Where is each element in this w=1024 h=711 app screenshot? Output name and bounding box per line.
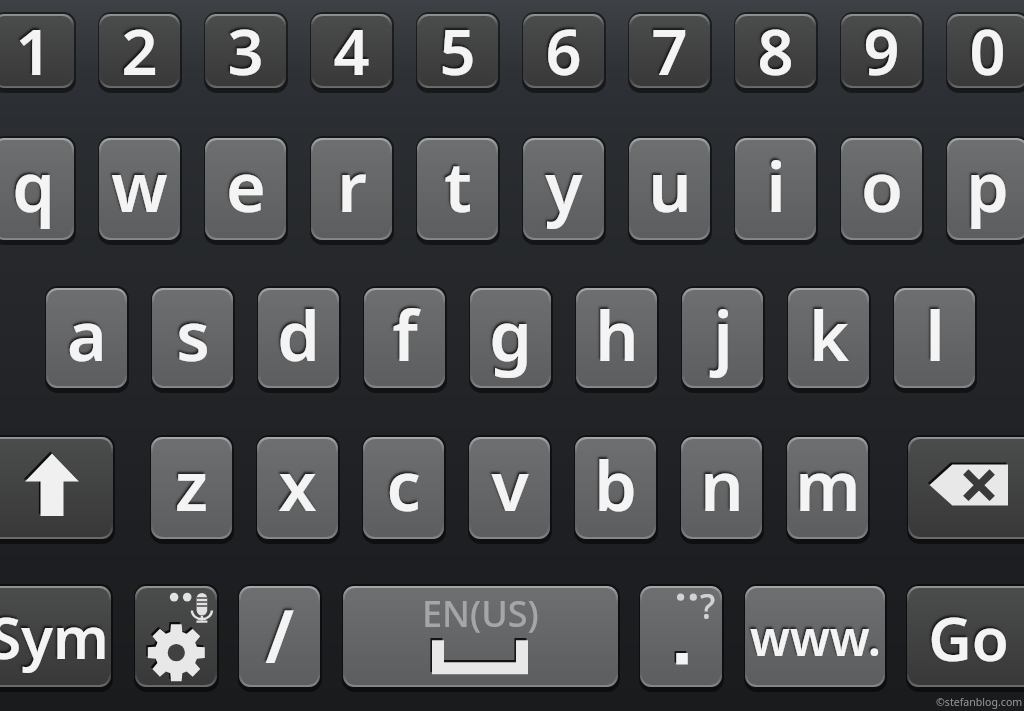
staticText: Sym [0,597,109,676]
staticText: www. [750,605,881,670]
staticText: v [491,438,529,531]
button[interactable]: h [576,288,657,388]
button[interactable]: k [788,288,869,388]
button[interactable]: p [947,138,1024,240]
staticText: y [545,139,583,232]
staticText: w [111,139,168,232]
staticText: e [226,139,266,232]
staticText: ©stefanblog.com [936,695,1023,709]
button[interactable]: / [239,586,320,687]
button[interactable]: Shift [0,437,113,539]
button[interactable]: t [417,138,498,240]
button[interactable]: Backspace [908,437,1024,539]
button[interactable]: 9 [841,14,922,88]
button[interactable]: www. [745,586,885,687]
staticText: z [175,438,208,531]
staticText: EN(US) [422,589,539,638]
button[interactable]: y [523,138,604,240]
staticText: t [444,139,472,232]
button[interactable]: Keyboard settings [135,586,217,687]
button[interactable]: q [0,138,74,240]
staticText: 3 [227,14,264,82]
button[interactable]: l [894,288,975,388]
staticText: k [809,288,849,381]
staticText: f [392,288,418,381]
button[interactable]: j [682,288,763,388]
button[interactable]: Sym [0,586,111,687]
button[interactable]: 6 [523,14,604,88]
button[interactable]: n [681,437,762,539]
button[interactable]: m [787,437,868,539]
staticText: p [966,139,1009,232]
staticText: j [713,288,733,381]
button[interactable]: 3 [205,14,286,88]
staticText: 1 [15,14,52,82]
staticText: 9 [863,14,900,82]
button[interactable]: o [841,138,922,240]
staticText: 5 [439,14,476,82]
button[interactable]: 8 [735,14,816,88]
staticText: q [12,139,55,232]
staticText: d [277,288,320,381]
button[interactable]: u [629,138,710,240]
button[interactable]: i [735,138,816,240]
button[interactable]: x [257,437,338,539]
button[interactable]: 7 [629,14,710,88]
staticText: s [176,288,210,381]
staticText: o [861,139,903,232]
button[interactable]: g [470,288,551,388]
button[interactable]: v [469,437,550,539]
staticText: ? [700,586,716,629]
button[interactable]: b [575,437,656,539]
staticText: Go [928,597,1009,679]
staticText: i [766,139,786,232]
button[interactable]: s [152,288,233,388]
staticText: 7 [651,14,688,82]
staticText: x [278,438,317,531]
button[interactable]: w [99,138,180,240]
button[interactable]: 2 [99,14,180,88]
staticText: 8 [757,14,794,82]
button[interactable]: Space [343,586,618,687]
staticText: 0 [969,14,1006,82]
staticText: b [594,438,637,531]
staticText: 6 [545,14,582,82]
staticText: n [700,438,744,531]
staticText: a [67,288,107,381]
staticText: 2 [121,14,158,82]
button[interactable]: 0 [947,14,1024,88]
button[interactable]: a [46,288,127,388]
staticText: u [648,139,692,232]
button[interactable]: e [205,138,286,240]
staticText: 4 [333,14,370,82]
button[interactable]: z [151,437,232,539]
staticText: h [595,288,639,381]
staticText: g [489,288,532,381]
button[interactable]: c [363,437,444,539]
staticText: r [337,139,367,232]
button[interactable]: f [364,288,445,388]
staticText: / [265,586,294,684]
staticText: c [386,438,421,531]
staticText: l [925,288,945,381]
button[interactable]: d [258,288,339,388]
button[interactable]: 1 [0,14,74,88]
button[interactable]: r [311,138,392,240]
button[interactable]: 4 [311,14,392,88]
staticText: m [795,438,861,531]
button[interactable]: Go [907,586,1024,687]
button[interactable]: Period [640,586,722,687]
button[interactable]: 5 [417,14,498,88]
